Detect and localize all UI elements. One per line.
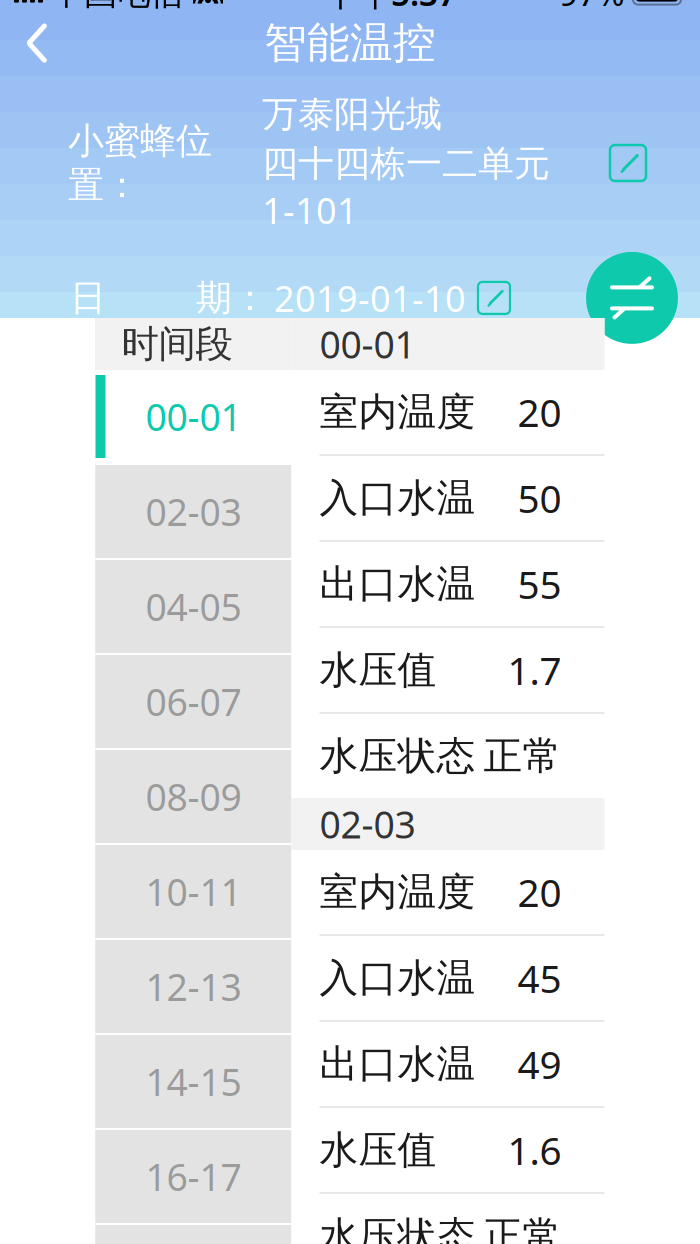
staticText: 室内温度	[319, 868, 475, 916]
staticText: 02-03	[145, 487, 241, 536]
staticText: 49	[517, 1038, 561, 1090]
button[interactable]: 切换	[586, 252, 678, 344]
staticText: 06-07	[145, 677, 241, 726]
staticText: 水压状态	[319, 732, 475, 780]
staticText: 97%	[559, 0, 625, 15]
staticText: 水压状态	[319, 1212, 475, 1244]
staticText: 16-17	[145, 1152, 241, 1201]
staticText: 02-03	[319, 799, 415, 849]
staticText: 小蜜蜂位置：	[68, 119, 212, 207]
button[interactable]: 10-11	[95, 845, 291, 938]
staticText: 正常	[483, 732, 561, 780]
staticText: 20	[517, 866, 561, 918]
button[interactable]: 02-03	[95, 465, 291, 558]
staticText: 00-01	[145, 392, 241, 441]
staticText: 14-15	[145, 1057, 241, 1106]
staticText: 中国电信	[51, 0, 183, 13]
button[interactable]: 08-09	[95, 750, 291, 843]
staticText: 下午5:37	[325, 0, 457, 15]
staticText: 出口水温	[319, 560, 475, 608]
button[interactable]: 编辑位置	[602, 137, 654, 189]
staticText: 2019-01-10	[274, 274, 466, 322]
button[interactable]: 返回	[12, 12, 62, 74]
staticText: 1.7	[507, 644, 561, 696]
staticText: 入口水温	[319, 474, 475, 522]
staticText: 四十四栋一二单元 1-101	[262, 138, 550, 234]
staticText: 04-05	[145, 582, 241, 631]
button[interactable]: 00-01	[95, 370, 291, 463]
button[interactable]: 编辑日期	[466, 276, 510, 320]
button[interactable]: 12-13	[95, 940, 291, 1033]
staticText: 08-09	[145, 772, 241, 821]
staticText: 期：	[196, 276, 268, 320]
staticText: 55	[517, 558, 561, 610]
staticText: 出口水温	[319, 1040, 475, 1088]
button[interactable]: 16-17	[95, 1130, 291, 1223]
staticText: 水压值	[319, 646, 436, 694]
staticText: 20	[517, 386, 561, 438]
staticText: 万泰阳光城	[262, 92, 442, 136]
staticText: 正常	[483, 1212, 561, 1244]
staticText: 室内温度	[319, 388, 475, 436]
staticText: 时间段	[121, 321, 232, 367]
staticText: 入口水温	[319, 954, 475, 1002]
button[interactable]: 04-05	[95, 560, 291, 653]
staticText: 10-11	[145, 867, 241, 916]
staticText: 日	[70, 276, 106, 320]
staticText: 45	[517, 952, 561, 1004]
staticText: 50	[517, 472, 561, 524]
staticText: 水压值	[319, 1126, 436, 1174]
button[interactable]: 14-15	[95, 1035, 291, 1128]
staticText: 1.6	[507, 1124, 561, 1176]
staticText: 12-13	[145, 962, 241, 1011]
button[interactable]: 06-07	[95, 655, 291, 748]
staticText: 智能温控	[264, 17, 436, 69]
staticText: 00-01	[319, 319, 415, 369]
